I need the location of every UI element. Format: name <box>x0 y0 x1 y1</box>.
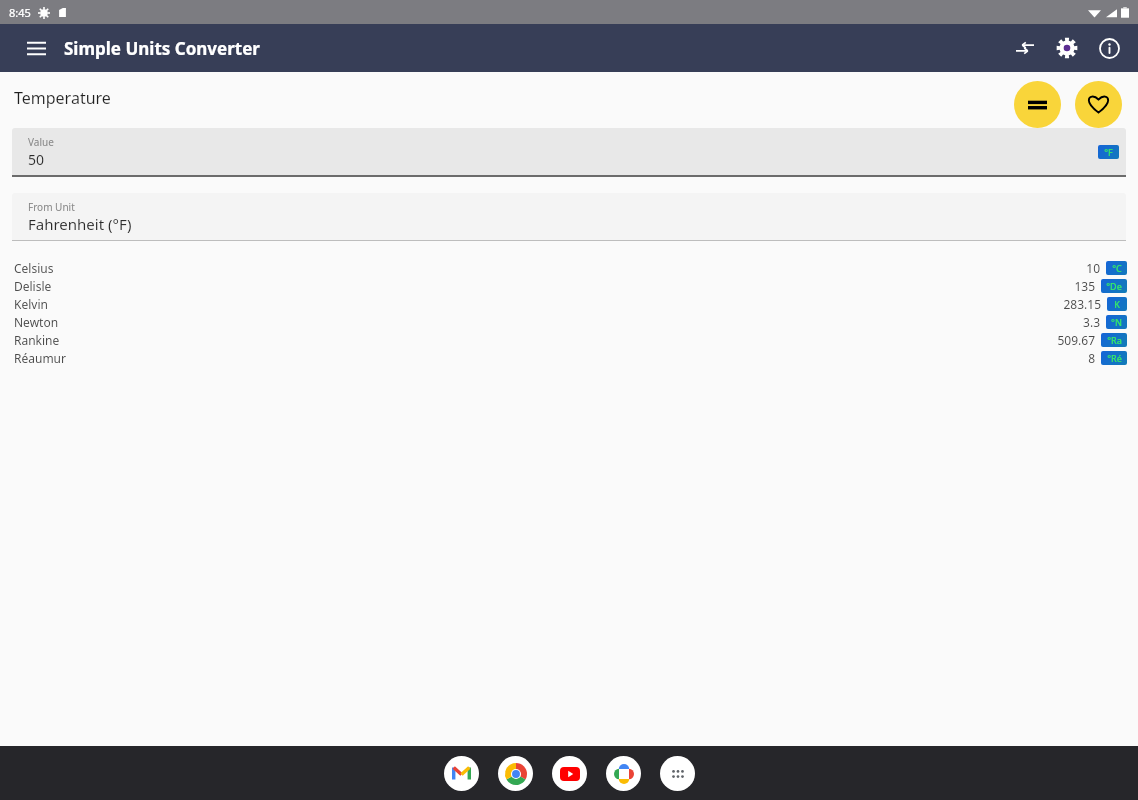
button[interactable]: Value <box>12 128 1126 175</box>
button[interactable]: Rankine <box>0 331 1138 349</box>
button[interactable]: Celsius <box>0 259 1138 277</box>
staticText: Value <box>28 135 54 149</box>
button[interactable]: About <box>1088 27 1130 69</box>
staticText: 50 <box>28 150 45 169</box>
staticText: K <box>1114 298 1120 310</box>
staticText: 3.3 <box>1083 314 1100 330</box>
staticText: 283.15 <box>1063 296 1101 312</box>
staticText: 509.67 <box>1057 332 1095 348</box>
button[interactable]: From Unit <box>12 193 1126 240</box>
staticText: °F <box>1104 146 1113 158</box>
staticText: Delisle <box>14 278 52 294</box>
staticText: °Ra <box>1107 334 1122 346</box>
staticText: Celsius <box>14 260 54 276</box>
button[interactable]: Chrome <box>498 756 533 791</box>
staticText: From Unit <box>28 200 75 214</box>
button[interactable]: Delisle <box>0 277 1138 295</box>
staticText: °N <box>1111 316 1122 328</box>
button[interactable]: Convert <box>1014 81 1061 128</box>
staticText: 10 <box>1086 260 1100 276</box>
button[interactable]: All apps <box>660 756 695 791</box>
button[interactable]: Add to favourites <box>1075 81 1122 128</box>
staticText: Rankine <box>14 332 60 348</box>
staticText: °De <box>1106 280 1122 292</box>
staticText: Réaumur <box>14 350 66 366</box>
button[interactable]: Photos <box>606 756 641 791</box>
staticText: 135 <box>1074 278 1095 294</box>
button[interactable]: YouTube <box>552 756 587 791</box>
button[interactable]: Open navigation menu <box>16 28 56 68</box>
button[interactable]: Gmail <box>444 756 479 791</box>
staticText: °Ré <box>1107 352 1122 364</box>
button[interactable]: Kelvin <box>0 295 1138 313</box>
button[interactable]: Réaumur <box>0 349 1138 367</box>
staticText: 8:45 <box>9 5 31 20</box>
staticText: °C <box>1112 262 1122 274</box>
staticText: Temperature <box>14 87 111 109</box>
button[interactable]: Newton <box>0 313 1138 331</box>
staticText: Newton <box>14 314 59 330</box>
button[interactable]: Settings <box>1046 27 1088 69</box>
staticText: Fahrenheit (°F) <box>28 214 132 234</box>
staticText: 8 <box>1088 350 1095 366</box>
staticText: Simple Units Converter <box>64 37 260 60</box>
button[interactable]: Swap units <box>1004 27 1046 69</box>
staticText: Kelvin <box>14 296 48 312</box>
